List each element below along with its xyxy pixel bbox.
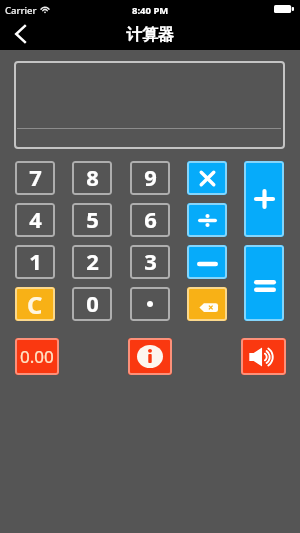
button[interactable]: 0: [72, 287, 112, 321]
button[interactable]: Sound: [241, 338, 286, 375]
button[interactable]: 2: [72, 245, 112, 279]
button[interactable]: 7: [15, 161, 55, 195]
staticText: 0.00: [20, 345, 54, 368]
staticText: 2: [86, 246, 99, 276]
staticText: 4: [29, 204, 42, 234]
button[interactable]: C: [15, 287, 55, 321]
staticText: 5: [86, 204, 99, 234]
button[interactable]: 4: [15, 203, 55, 237]
staticText: 9: [144, 162, 157, 192]
button[interactable]: Multiply: [187, 161, 227, 195]
staticText: 1: [29, 246, 42, 276]
button[interactable]: 6: [130, 203, 170, 237]
staticText: 8: [86, 162, 99, 192]
button[interactable]: Plus: [244, 161, 284, 237]
staticText: 计算器: [126, 25, 174, 45]
button[interactable]: Info: [128, 338, 172, 375]
staticText: 3: [144, 246, 157, 276]
button[interactable]: 8: [72, 161, 112, 195]
staticText: 0: [86, 288, 99, 318]
staticText: 7: [29, 162, 42, 192]
button[interactable]: Equals: [244, 245, 284, 321]
button[interactable]: 3: [130, 245, 170, 279]
button[interactable]: 0.00: [15, 338, 59, 375]
staticText: Carrier: [5, 4, 37, 17]
staticText: C: [27, 288, 43, 321]
button[interactable]: Back: [4, 18, 38, 50]
button[interactable]: 1: [15, 245, 55, 279]
staticText: 8:40 PM: [132, 4, 169, 17]
button[interactable]: Minus: [187, 245, 227, 279]
staticText: 6: [144, 204, 157, 234]
button[interactable]: 5: [72, 203, 112, 237]
button[interactable]: Decimal point: [130, 287, 170, 321]
button[interactable]: 9: [130, 161, 170, 195]
button[interactable]: [14, 61, 285, 149]
button[interactable]: Divide: [187, 203, 227, 237]
button[interactable]: Backspace: [187, 287, 227, 321]
